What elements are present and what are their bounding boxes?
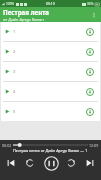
button[interactable]: Next bbox=[83, 156, 97, 170]
button[interactable]: Download bbox=[84, 26, 96, 38]
staticText: 2 bbox=[13, 49, 16, 55]
button[interactable]: More options bbox=[87, 8, 100, 21]
button[interactable]: 2 bbox=[1, 42, 100, 61]
staticText: 1 bbox=[13, 29, 16, 35]
button[interactable]: 5 bbox=[1, 102, 100, 121]
button[interactable]: 3 bbox=[1, 62, 100, 81]
staticText: Пестрая лента от Дойл Артур Конан — 1 bbox=[13, 148, 88, 153]
button[interactable]: Download bbox=[84, 66, 96, 78]
staticText: Пестрая лента bbox=[3, 8, 50, 16]
button[interactable]: Pause bbox=[42, 154, 60, 172]
staticText: 5 bbox=[13, 109, 16, 115]
button[interactable]: 1 bbox=[1, 22, 100, 41]
staticText: 100% bbox=[6, 2, 15, 6]
button[interactable]: Previous bbox=[4, 156, 18, 170]
staticText: 00:10 bbox=[46, 1, 55, 6]
button[interactable]: Rewind 15 seconds bbox=[23, 156, 37, 170]
staticText: 00:02 bbox=[2, 143, 12, 148]
staticText: 4 bbox=[13, 89, 16, 95]
button[interactable]: Seek bbox=[12, 142, 89, 148]
staticText: 3 bbox=[13, 69, 16, 75]
button[interactable]: Download bbox=[84, 46, 96, 58]
staticText: 12:09 bbox=[89, 143, 99, 148]
button[interactable]: Download bbox=[84, 106, 96, 118]
button[interactable]: 4 bbox=[1, 82, 100, 101]
button[interactable]: Download bbox=[84, 86, 96, 98]
button[interactable]: Forward 15 seconds bbox=[64, 156, 78, 170]
staticText: 35% bbox=[87, 2, 94, 6]
staticText: от Дойл Артур Конан bbox=[3, 17, 44, 22]
